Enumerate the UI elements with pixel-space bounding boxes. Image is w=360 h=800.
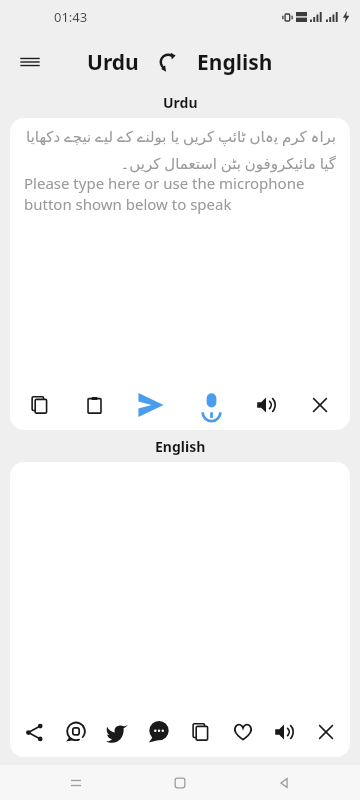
staticText: Please type here or use the microphone b… — [24, 173, 336, 215]
button[interactable]: Clear — [296, 383, 344, 427]
button[interactable]: Share — [14, 710, 54, 754]
staticText: Urdu — [87, 48, 139, 77]
button[interactable]: Copy — [16, 383, 64, 427]
button[interactable]: Urdu — [87, 48, 139, 77]
button[interactable]: Clear — [306, 710, 346, 754]
button[interactable]: Translate — [123, 383, 179, 427]
button[interactable]: Speak — [185, 383, 237, 427]
button[interactable]: Swap languages — [153, 47, 183, 77]
button[interactable]: Paste — [70, 383, 118, 427]
button[interactable]: Menu — [8, 40, 52, 84]
button[interactable]: Back — [256, 765, 312, 800]
button[interactable]: English — [197, 48, 273, 77]
staticText: English — [155, 437, 206, 456]
button[interactable]: Favourite — [223, 710, 263, 754]
button[interactable]: Share on Twitter — [97, 710, 137, 754]
staticText: 01:43 — [54, 8, 88, 26]
button[interactable]: Recent apps — [48, 765, 104, 800]
button[interactable]: Copy — [181, 710, 221, 754]
button[interactable]: Listen — [264, 710, 304, 754]
button[interactable]: Share on WhatsApp — [56, 710, 96, 754]
staticText: English — [197, 48, 273, 77]
staticText: براہ کرم یہاں ٹائپ کریں یا بولنے کے لیے … — [24, 126, 336, 173]
button[interactable]: Send SMS — [139, 710, 179, 754]
button[interactable]: Listen — [242, 383, 290, 427]
staticText: Urdu — [163, 93, 198, 112]
button[interactable]: Home — [152, 765, 208, 800]
